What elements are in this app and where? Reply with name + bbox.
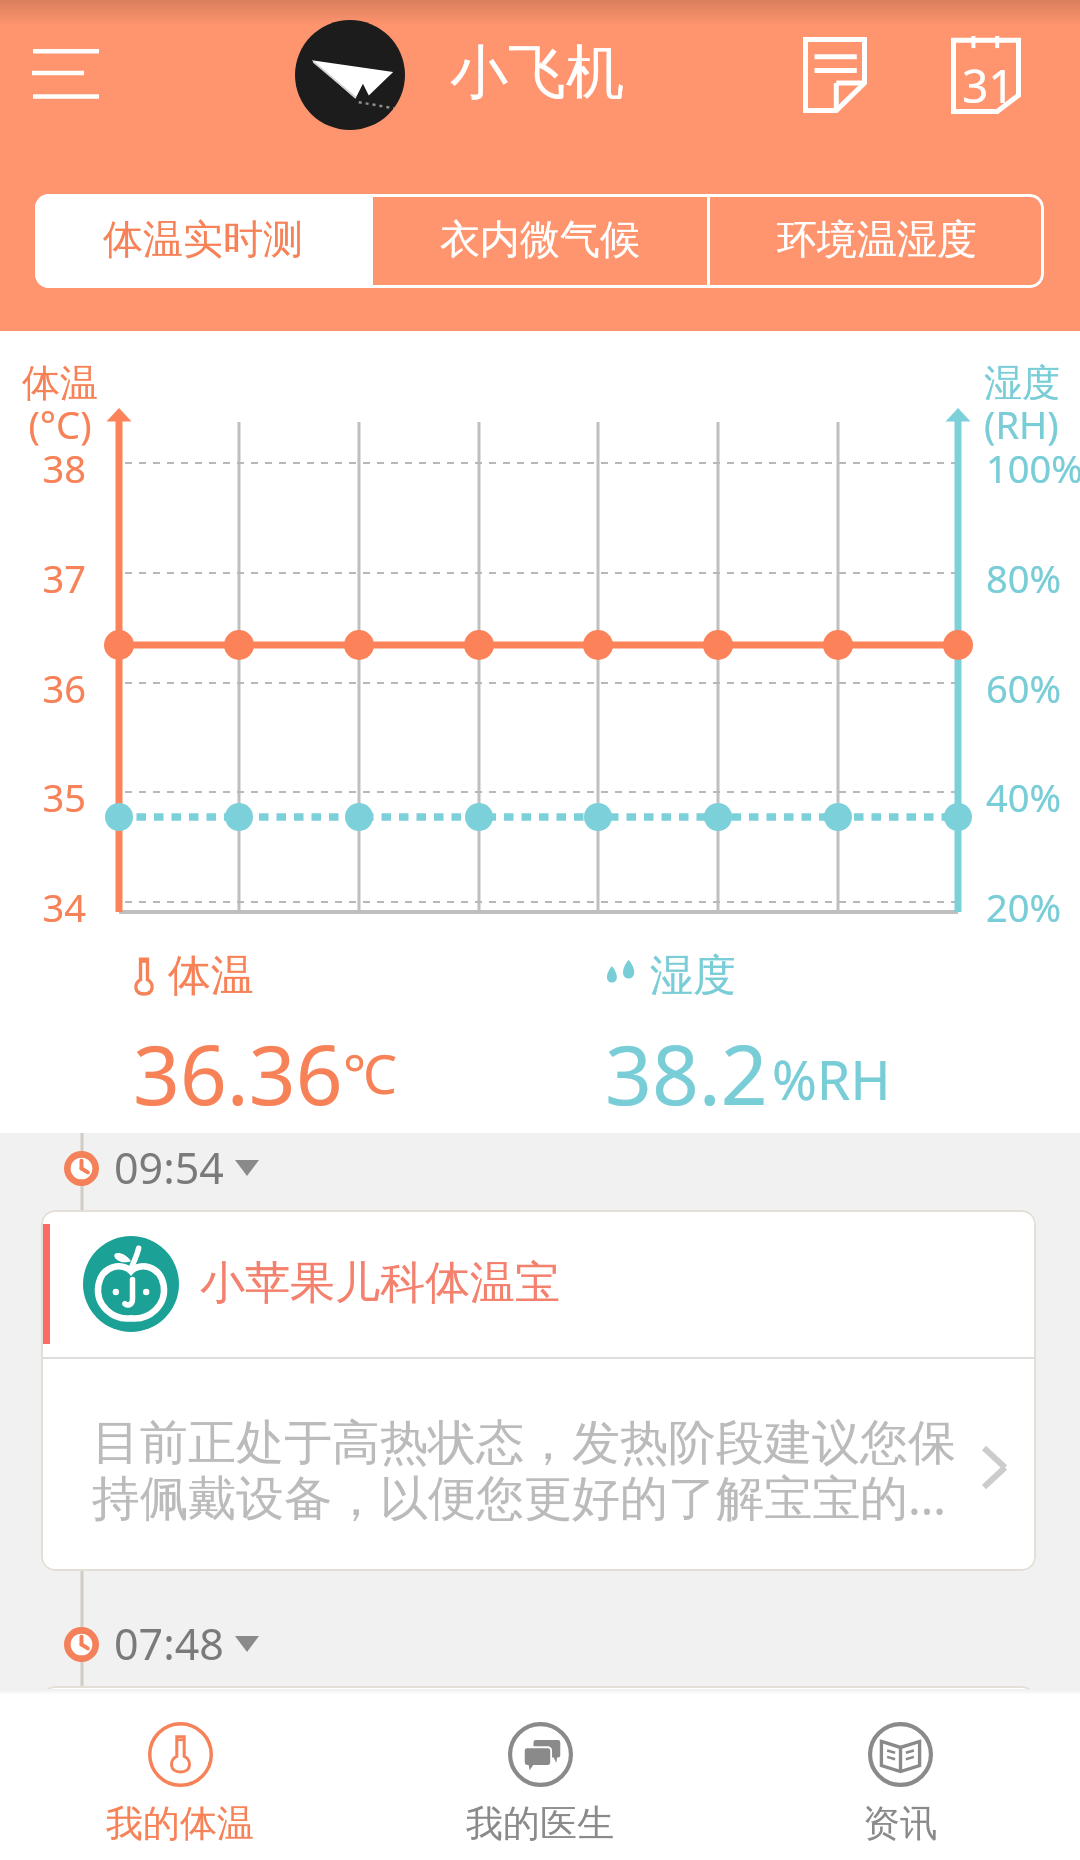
staticText: 31 — [962, 54, 1015, 117]
staticText: 36.36 — [133, 1017, 343, 1129]
staticText: 体温 — [168, 949, 254, 1003]
staticText: 小苹果儿科体温宝 — [200, 1255, 560, 1312]
staticText: 20% — [986, 881, 1080, 933]
staticText: 60% — [986, 662, 1080, 714]
staticText: 40% — [986, 771, 1080, 823]
button[interactable]: 体温实时测 — [35, 194, 370, 288]
staticText: (°C) — [20, 398, 100, 450]
button[interactable]: Notes — [779, 19, 891, 131]
staticText: 80% — [986, 552, 1080, 604]
staticText: 100% — [986, 442, 1080, 494]
staticText: 07:48 — [114, 1614, 224, 1673]
staticText: 35 — [0, 771, 86, 823]
staticText: 小苹果儿科体温宝 — [200, 1731, 560, 1788]
staticText: (RH) — [984, 398, 1080, 450]
button[interactable]: Menu — [13, 29, 119, 121]
button[interactable]: 环境温湿度 — [710, 194, 1044, 288]
staticText: 体温 — [22, 359, 118, 407]
staticText: 湿度 — [984, 359, 1080, 407]
staticText: 湿度 — [650, 949, 736, 1003]
button[interactable]: Calendar — [930, 19, 1042, 131]
staticText: 环境温湿度 — [777, 214, 977, 264]
staticText: %RH — [772, 1042, 891, 1116]
staticText: 38.2 — [605, 1017, 768, 1129]
staticText: 37 — [0, 552, 86, 604]
staticText: ℃ — [343, 1036, 397, 1110]
staticText: 资讯 — [863, 1800, 937, 1847]
button[interactable]: 09:54 — [64, 1137, 259, 1199]
button[interactable]: 07:48 — [64, 1613, 259, 1675]
staticText: 34 — [0, 881, 86, 933]
button[interactable]: 我的医生 — [360, 1695, 720, 1860]
staticText: 36 — [0, 662, 86, 714]
staticText: 目前正处于高热状态，发热阶段建议您保持佩戴设备，以便您更好的了解宝宝的… — [92, 1413, 964, 1529]
button[interactable]: 衣内微气候 — [373, 194, 707, 288]
staticText: 我的医生 — [466, 1800, 614, 1847]
button[interactable]: 资讯 — [720, 1695, 1080, 1860]
button[interactable]: 小苹果儿科体温宝 — [41, 1686, 1036, 1860]
staticText: 小飞机 — [450, 36, 624, 109]
staticText: 09:54 — [114, 1138, 224, 1197]
staticText: 衣内微气候 — [440, 214, 640, 264]
staticText: 38 — [0, 442, 86, 494]
staticText: 体温实时测 — [103, 214, 303, 264]
button[interactable]: 我的体温 — [0, 1695, 360, 1860]
button[interactable]: 小苹果儿科体温宝 — [41, 1210, 1036, 1571]
staticText: 我的体温 — [106, 1800, 254, 1847]
